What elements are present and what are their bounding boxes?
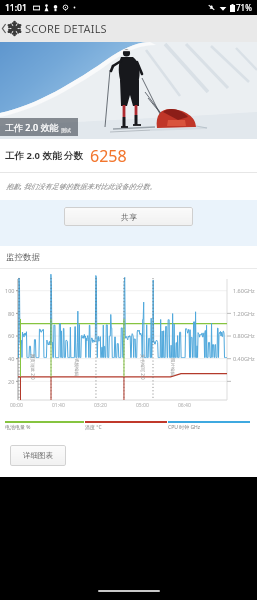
staticText: 测试	[61, 127, 71, 133]
staticText: 工作 2.0 效能 分数	[5, 149, 83, 162]
staticText: 20	[8, 378, 15, 385]
staticText: 06:40	[178, 402, 191, 409]
staticText: 抱歉, 我们没有足够的数据来对比此设备的分数。	[6, 182, 157, 192]
staticText: 6258	[90, 145, 127, 167]
staticText: 0.40GHz	[233, 355, 255, 362]
button[interactable]: 共享	[64, 207, 193, 226]
staticText: 71%	[236, 2, 252, 13]
button[interactable]: 详细图表	[10, 445, 66, 466]
staticText: 01:40	[52, 402, 65, 409]
staticText: CPU 时钟 GHz	[168, 424, 201, 431]
staticText: 05:00	[136, 402, 149, 409]
staticText: 照片编辑	[169, 358, 175, 376]
staticText: SCORE DETAILS	[25, 21, 107, 36]
button[interactable]: Back	[0, 15, 8, 42]
staticText: 共享	[121, 212, 137, 222]
staticText: 11:01	[5, 2, 27, 14]
staticText: 电池电量 %	[5, 424, 31, 431]
staticText: 监控数据	[6, 252, 40, 263]
staticText: 100	[5, 287, 15, 294]
staticText: 60	[8, 332, 15, 339]
staticText: 1.60GHz	[233, 287, 255, 294]
staticText: 80	[8, 310, 15, 317]
staticText: 详细图表	[23, 451, 53, 460]
staticText: 03:20	[94, 402, 107, 409]
staticText: 1.20GHz	[233, 310, 255, 317]
staticText: 0.80GHz	[233, 332, 255, 339]
staticText: 00:00	[10, 402, 23, 409]
staticText: 温度 °C	[85, 424, 102, 431]
staticText: 工作 2.0 效能	[5, 121, 59, 133]
staticText: 网页浏览 2.0	[30, 354, 36, 380]
staticText: 40	[8, 355, 15, 362]
staticText: 文书编写 2.0	[140, 354, 146, 380]
staticText: 视频编辑	[73, 358, 79, 376]
